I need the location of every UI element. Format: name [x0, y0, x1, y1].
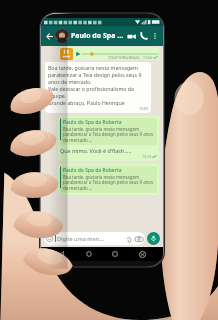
button[interactable]: Camera [135, 235, 143, 243]
button[interactable]: Record voice message [147, 232, 160, 245]
button[interactable]: Voice call [138, 30, 150, 42]
staticText: Boa tarde, gostaria nesta mensagem parab… [63, 174, 156, 192]
staticText: Paulo do Spa da Roberta [63, 167, 122, 174]
button[interactable]: Paulo do Spa da Roberta [58, 116, 159, 161]
staticText: Que mimo. Você é d'flash….. [60, 147, 132, 154]
button[interactable]: Contact photo [55, 29, 69, 43]
button[interactable]: Home [83, 248, 95, 260]
staticText: 13:13 [142, 154, 151, 159]
button[interactable]: Digite uma men… [44, 232, 145, 245]
staticText: Boa tarde, gostaria nesta mensagem parab… [63, 126, 156, 144]
button[interactable]: Video call [125, 30, 138, 43]
button[interactable]: 57GdF1HD3zfM4d2… [59, 47, 159, 60]
staticText: 13:03 [139, 106, 148, 111]
button[interactable]: Paulo do Spa da Roberta [58, 164, 159, 195]
staticText: Boa tarde, gostaria nesta mensagem parab… [48, 64, 148, 85]
staticText: 57GdF1HD3zfM4d2… [108, 55, 142, 60]
button[interactable]: Back [44, 31, 55, 42]
staticText: Vale destacar o profissionalismo da equi… [48, 85, 148, 99]
staticText: Paulo do Spa da Roberta [63, 119, 122, 126]
button[interactable]: Attach [125, 235, 133, 243]
button[interactable]: Back [56, 248, 68, 260]
button[interactable]: Screenshot [136, 248, 148, 260]
button[interactable]: Boa tarde, gostaria nesta mensagem parab… [45, 62, 151, 113]
button[interactable]: More options [150, 31, 160, 41]
staticText: 13:54 [143, 55, 152, 60]
button[interactable]: Paulo do Spa da… [71, 31, 125, 41]
button[interactable]: Recent apps [109, 248, 121, 260]
staticText: Grande abraço, Paulo Henrique [48, 99, 125, 106]
staticText: Digite uma men… [57, 235, 125, 243]
